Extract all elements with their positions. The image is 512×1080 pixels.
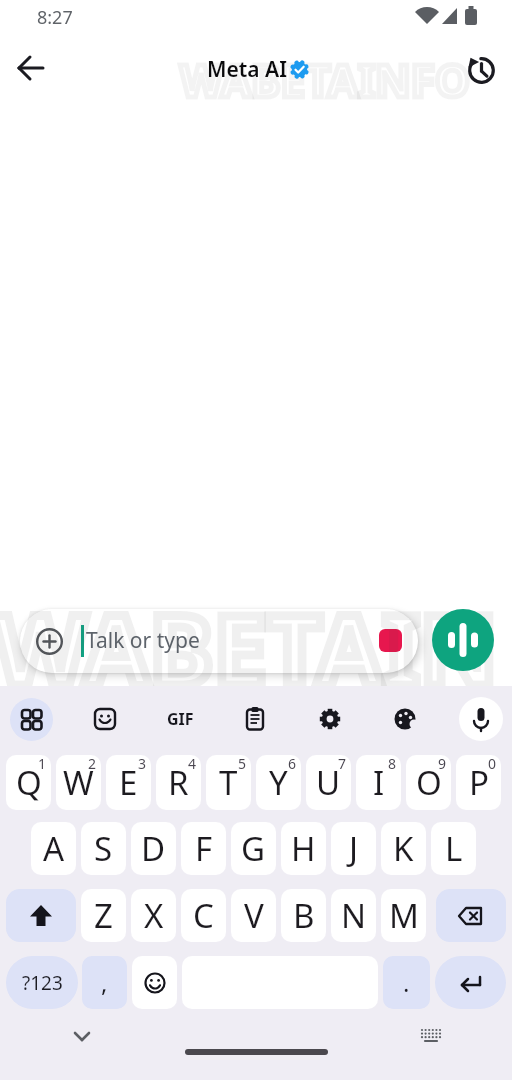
staticText: L — [445, 826, 463, 871]
button[interactable]: S — [81, 822, 126, 875]
button[interactable]: T — [206, 755, 251, 810]
staticText: U — [316, 760, 341, 805]
button[interactable] — [12, 49, 50, 87]
button[interactable] — [62, 1016, 102, 1056]
staticText: 7 — [338, 755, 347, 773]
staticText: T — [219, 760, 238, 805]
staticText: E — [119, 760, 138, 805]
staticText: , — [101, 966, 108, 999]
staticText: 5 — [238, 755, 247, 773]
button[interactable] — [6, 889, 76, 942]
staticText: D — [141, 826, 166, 871]
button[interactable]: U — [306, 755, 351, 810]
button[interactable]: N — [331, 889, 376, 942]
staticText: Z — [94, 893, 113, 938]
button[interactable]: K — [381, 822, 426, 875]
staticText: 8:27 — [37, 5, 73, 30]
staticText: 9 — [438, 755, 447, 773]
staticText: O — [416, 760, 442, 805]
staticText: 0 — [488, 755, 497, 773]
button[interactable] — [379, 629, 402, 652]
staticText: 2 — [88, 755, 97, 773]
staticText: WABETAINFO — [180, 50, 470, 110]
button[interactable]: F — [181, 822, 226, 875]
button[interactable]: E — [106, 755, 151, 810]
staticText: GIF — [167, 708, 194, 730]
staticText: 8 — [388, 755, 397, 773]
staticText: I — [373, 760, 385, 805]
button[interactable]: . — [383, 956, 430, 1009]
button[interactable]: P — [456, 755, 501, 810]
staticText: 6 — [288, 755, 297, 773]
button[interactable]: C — [181, 889, 226, 942]
button[interactable] — [432, 609, 494, 671]
button[interactable]: Q — [6, 755, 51, 810]
button[interactable]: J — [331, 822, 376, 875]
button[interactable] — [235, 699, 275, 739]
staticText: A — [43, 826, 65, 871]
staticText: B — [293, 893, 315, 938]
staticText: M — [389, 893, 419, 938]
button[interactable]: X — [131, 889, 176, 942]
staticText: ?123 — [22, 970, 63, 996]
button[interactable]: L — [431, 822, 476, 875]
button[interactable] — [385, 699, 425, 739]
staticText: P — [469, 760, 489, 805]
button[interactable] — [411, 1016, 451, 1056]
staticText: 3 — [138, 755, 147, 773]
button[interactable] — [132, 956, 177, 1009]
staticText: V — [244, 893, 264, 938]
button[interactable]: Talk or type — [20, 609, 418, 673]
button[interactable]: Z — [81, 889, 126, 942]
staticText: C — [193, 893, 214, 938]
staticText: N — [341, 893, 367, 938]
button[interactable]: Y — [256, 755, 301, 810]
button[interactable] — [435, 956, 506, 1009]
button[interactable]: B — [281, 889, 326, 942]
staticText: F — [195, 826, 213, 871]
staticText: Meta AI — [207, 55, 287, 84]
button[interactable]: R — [156, 755, 201, 810]
button[interactable]: O — [406, 755, 451, 810]
button[interactable] — [436, 889, 506, 942]
button[interactable]: D — [131, 822, 176, 875]
button[interactable]: M — [381, 889, 426, 942]
staticText: Y — [269, 760, 288, 805]
button[interactable]: A — [31, 822, 76, 875]
staticText: J — [349, 826, 359, 871]
button[interactable]: V — [231, 889, 276, 942]
staticText: Talk or type — [86, 626, 200, 655]
staticText: G — [241, 826, 266, 871]
staticText: X — [144, 893, 164, 938]
staticText: Q — [16, 760, 42, 805]
button[interactable]: , — [82, 956, 127, 1009]
button[interactable] — [310, 699, 350, 739]
button[interactable]: GIF — [160, 699, 200, 739]
staticText: 4 — [188, 755, 197, 773]
button[interactable]: G — [231, 822, 276, 875]
button[interactable] — [85, 699, 125, 739]
staticText: H — [291, 826, 316, 871]
button[interactable] — [462, 51, 500, 89]
button[interactable]: I — [356, 755, 401, 810]
button[interactable] — [459, 697, 503, 741]
button[interactable]: H — [281, 822, 326, 875]
staticText: WABETAINFO — [0, 582, 506, 844]
button[interactable]: ?123 — [6, 956, 78, 1009]
button[interactable] — [10, 698, 53, 741]
staticText: R — [168, 760, 189, 805]
staticText: 1 — [38, 755, 47, 773]
button[interactable]: W — [56, 755, 101, 810]
staticText: S — [94, 826, 113, 871]
staticText: . — [403, 966, 410, 999]
staticText: W — [63, 760, 94, 805]
staticText: K — [393, 826, 414, 871]
